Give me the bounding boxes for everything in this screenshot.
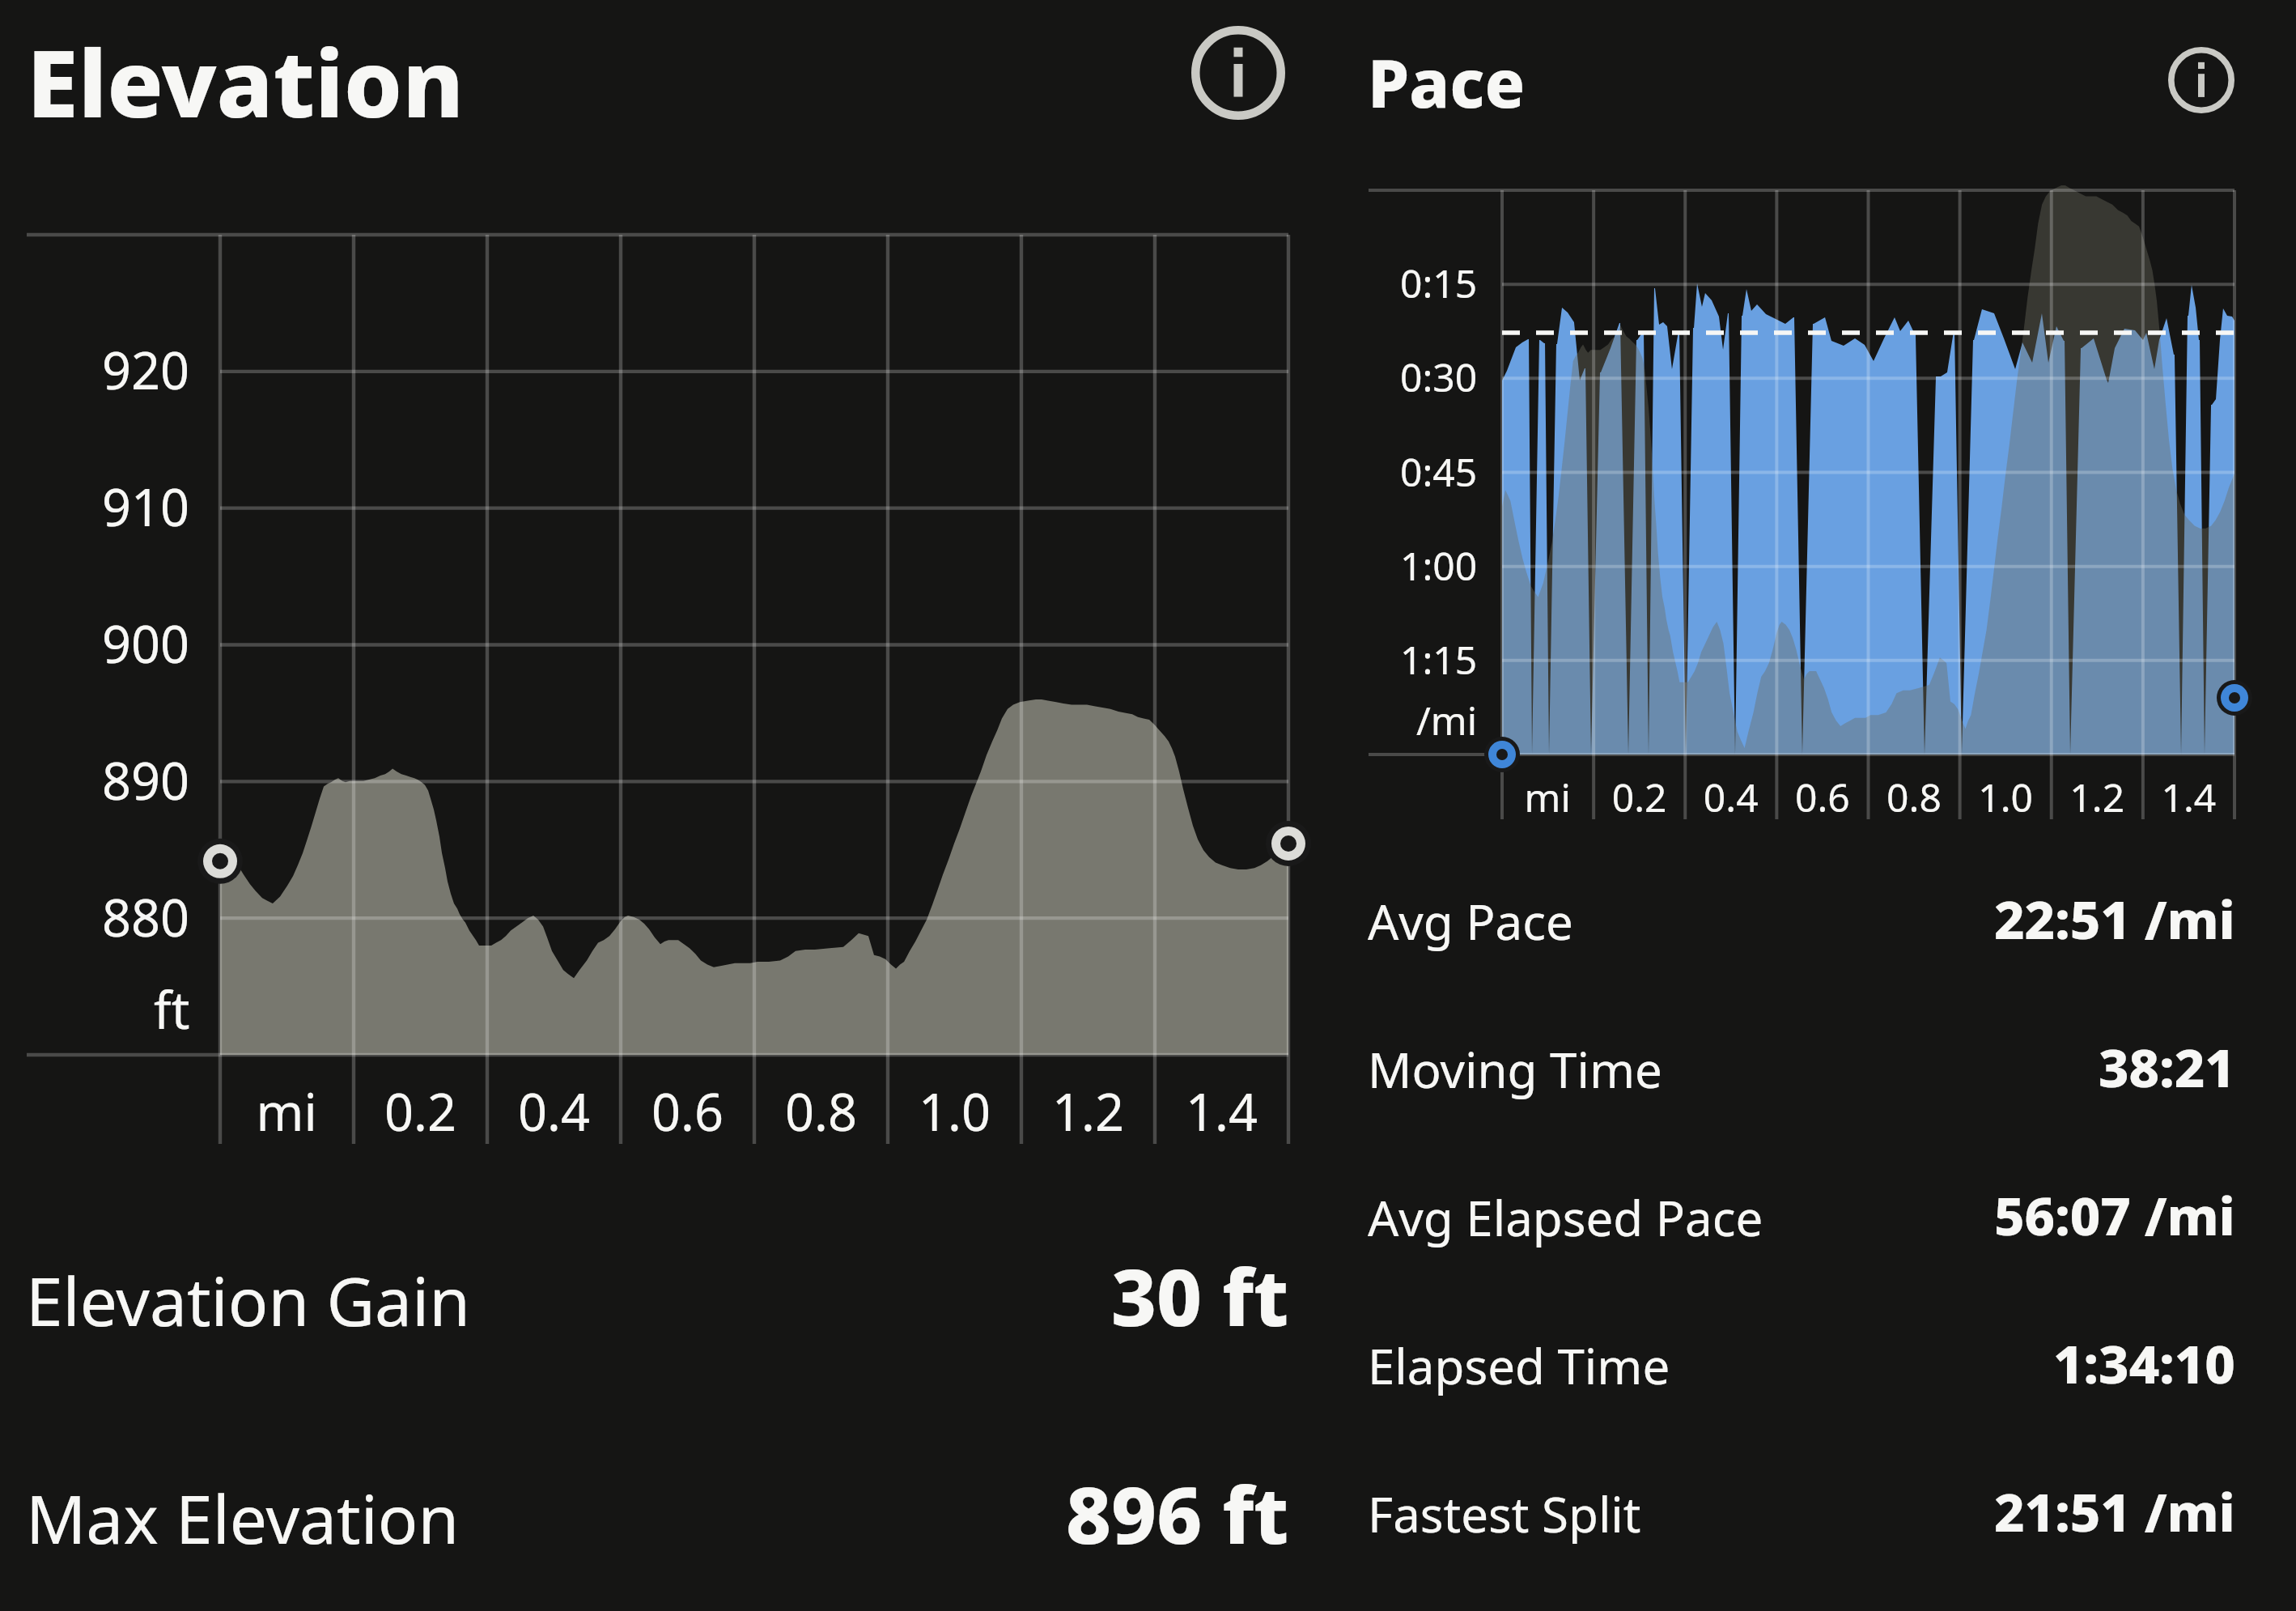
button[interactable]: About Elevation <box>1192 27 1284 119</box>
button[interactable]: About Pace <box>2168 47 2234 113</box>
